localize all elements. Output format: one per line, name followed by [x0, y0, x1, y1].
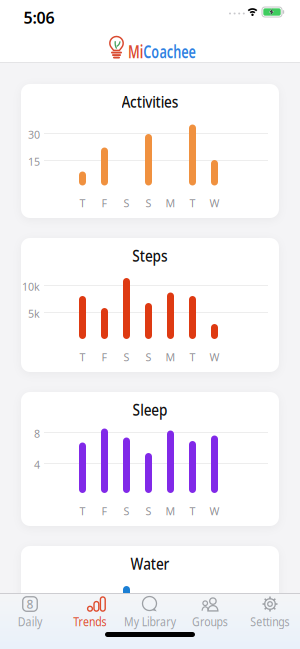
button[interactable]: Settings: [240, 596, 300, 630]
staticText: 5k: [28, 306, 40, 321]
staticText: 30: [28, 127, 40, 142]
button[interactable]: My Library: [120, 596, 180, 630]
button[interactable]: Steps: [21, 238, 279, 372]
staticText: W: [209, 196, 219, 210]
staticText: T: [79, 350, 85, 364]
staticText: T: [189, 196, 195, 210]
staticText: Sleep: [129, 399, 170, 420]
staticText: W: [209, 504, 219, 518]
staticText: Settings: [247, 613, 292, 629]
staticText: T: [189, 350, 195, 364]
staticText: Daily: [16, 613, 44, 629]
staticText: Water: [127, 553, 173, 574]
staticText: F: [101, 196, 107, 210]
staticText: 15: [28, 154, 40, 169]
staticText: S: [123, 350, 129, 364]
staticText: 4: [34, 457, 40, 472]
staticText: Groups: [189, 613, 230, 629]
staticText: M: [165, 504, 175, 518]
staticText: T: [79, 196, 85, 210]
button[interactable]: Activities: [21, 84, 279, 218]
staticText: F: [101, 504, 107, 518]
staticText: W: [209, 350, 219, 364]
staticText: S: [123, 196, 129, 210]
staticText: T: [79, 504, 85, 518]
button[interactable]: Groups: [180, 596, 240, 630]
staticText: 5:06: [23, 7, 54, 28]
button[interactable]: 8: [0, 596, 60, 630]
staticText: My Library: [120, 613, 179, 629]
staticText: Coachee: [149, 40, 221, 63]
staticText: 8: [34, 426, 40, 441]
staticText: S: [145, 196, 151, 210]
staticText: F: [101, 350, 107, 364]
staticText: S: [145, 350, 151, 364]
staticText: M: [165, 350, 175, 364]
staticText: 8: [26, 596, 33, 612]
staticText: T: [189, 504, 195, 518]
staticText: Trends: [71, 613, 109, 629]
staticText: S: [123, 504, 129, 518]
button[interactable]: Sleep: [21, 392, 279, 526]
staticText: Activities: [116, 91, 183, 112]
button[interactable]: Water: [21, 546, 279, 649]
staticText: S: [145, 504, 151, 518]
staticText: 10k: [22, 279, 40, 294]
staticText: Mi: [128, 40, 149, 63]
staticText: M: [165, 196, 175, 210]
button[interactable]: Trends: [60, 596, 120, 630]
staticText: Steps: [129, 245, 171, 266]
